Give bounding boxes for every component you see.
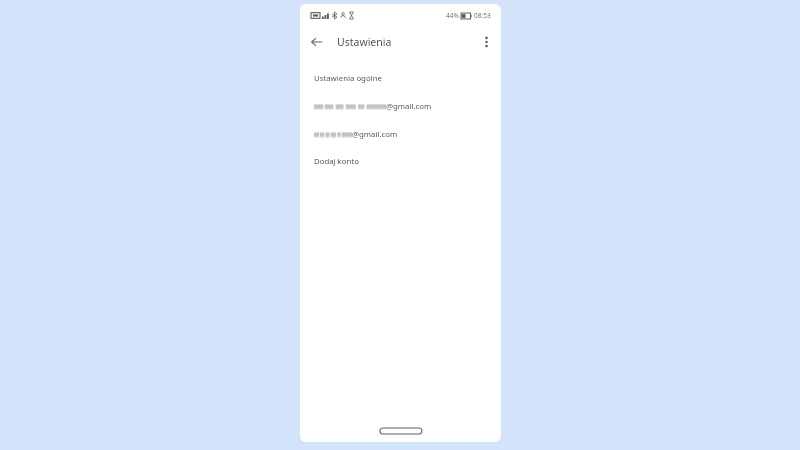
button[interactable]: Ustawienia ogólne xyxy=(300,64,501,92)
button[interactable]: Dodaj konto xyxy=(300,148,501,174)
staticText: @gmail.com xyxy=(386,101,432,112)
staticText: Ustawienia xyxy=(337,35,392,49)
button[interactable]: @gmail.com xyxy=(300,120,501,148)
staticText: 44% xyxy=(446,11,459,20)
staticText: Ustawienia ogólne xyxy=(314,73,382,84)
staticText: @gmail.com xyxy=(352,129,398,140)
staticText: 08:53 xyxy=(474,11,491,20)
staticText: Dodaj konto xyxy=(314,156,359,167)
button[interactable]: Back xyxy=(305,30,329,54)
button[interactable]: @gmail.com xyxy=(300,92,501,120)
button[interactable]: More options xyxy=(475,31,497,53)
